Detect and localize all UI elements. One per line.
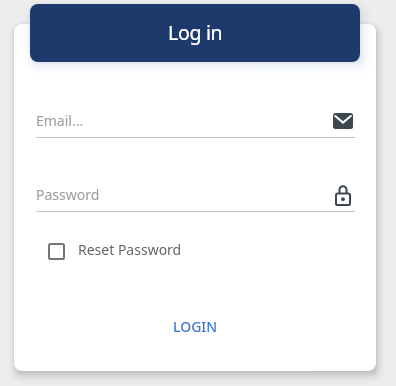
button[interactable] [36, 104, 355, 138]
staticText: Reset Password [78, 240, 182, 259]
button[interactable]: Log in [30, 4, 360, 62]
staticText: Password [36, 185, 100, 204]
button[interactable]: LOGIN [155, 308, 235, 344]
button[interactable]: Reset Password [40, 236, 240, 266]
staticText: Log in [168, 19, 223, 46]
staticText: Email... [36, 111, 84, 130]
staticText: LOGIN [173, 317, 218, 336]
button[interactable] [36, 178, 355, 212]
